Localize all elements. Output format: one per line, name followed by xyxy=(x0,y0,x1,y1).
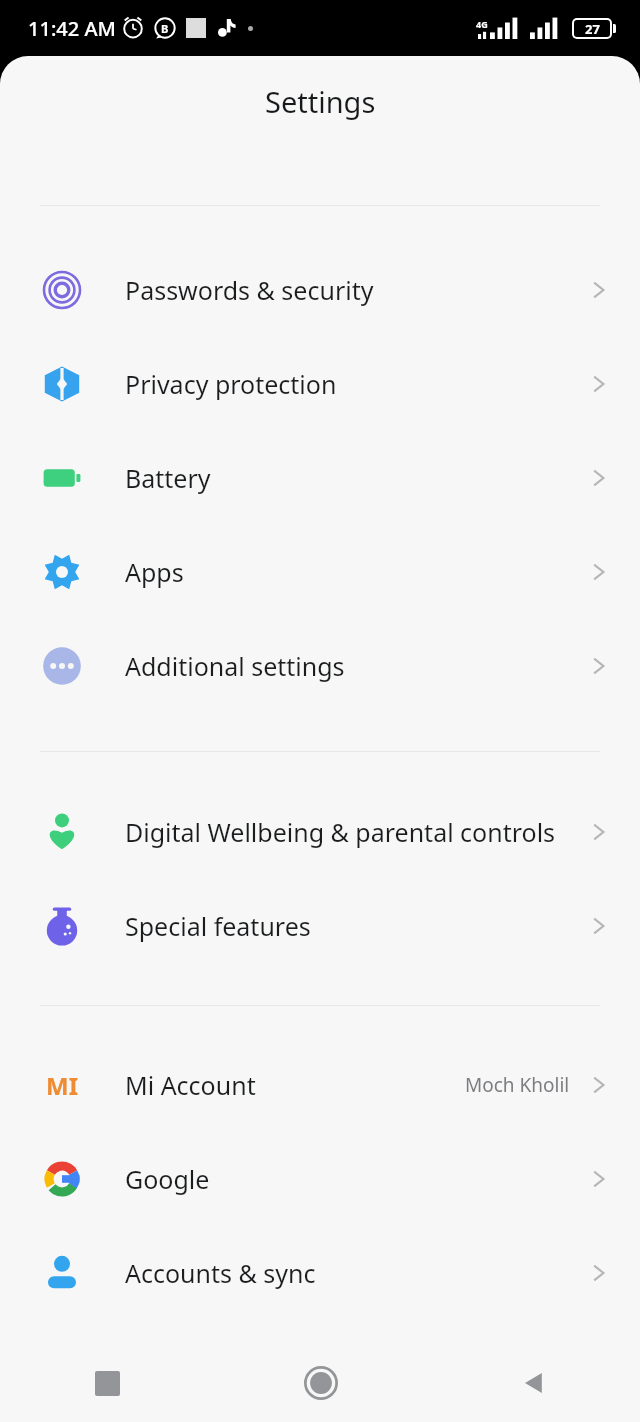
button[interactable]: Recents xyxy=(0,1344,214,1422)
staticText: Google xyxy=(125,1162,580,1196)
staticText: Privacy protection xyxy=(125,367,580,401)
staticText: Additional settings xyxy=(125,649,580,683)
button[interactable]: Home xyxy=(214,1344,427,1422)
staticText: B xyxy=(161,21,169,36)
button[interactable]: Back xyxy=(427,1344,640,1422)
staticText: Accounts & sync xyxy=(125,1256,580,1290)
button[interactable]: MI xyxy=(0,1038,640,1132)
button[interactable]: Privacy protection xyxy=(0,337,640,431)
staticText: MI xyxy=(46,1069,78,1102)
button[interactable]: Special features xyxy=(0,879,640,973)
button[interactable]: Passwords & security xyxy=(0,243,640,337)
staticText: Passwords & security xyxy=(125,273,580,307)
button[interactable]: Digital Wellbeing & parental controls xyxy=(0,785,640,879)
staticText: Moch Kholil xyxy=(465,1072,570,1098)
staticText: Special features xyxy=(125,909,580,943)
staticText: 4G xyxy=(476,18,488,30)
staticText: Digital Wellbeing & parental controls xyxy=(125,815,580,849)
staticText: 27 xyxy=(585,20,600,37)
button[interactable]: Accounts & sync xyxy=(0,1226,640,1320)
button[interactable]: Battery xyxy=(0,431,640,525)
button[interactable]: Google xyxy=(0,1132,640,1226)
staticText: 11:42 AM xyxy=(28,15,116,42)
staticText: Mi Account xyxy=(125,1068,465,1102)
button[interactable]: Apps xyxy=(0,525,640,619)
staticText: Settings xyxy=(265,82,376,121)
button[interactable]: Additional settings xyxy=(0,619,640,713)
staticText: Battery xyxy=(125,461,580,495)
staticText: Apps xyxy=(125,555,580,589)
